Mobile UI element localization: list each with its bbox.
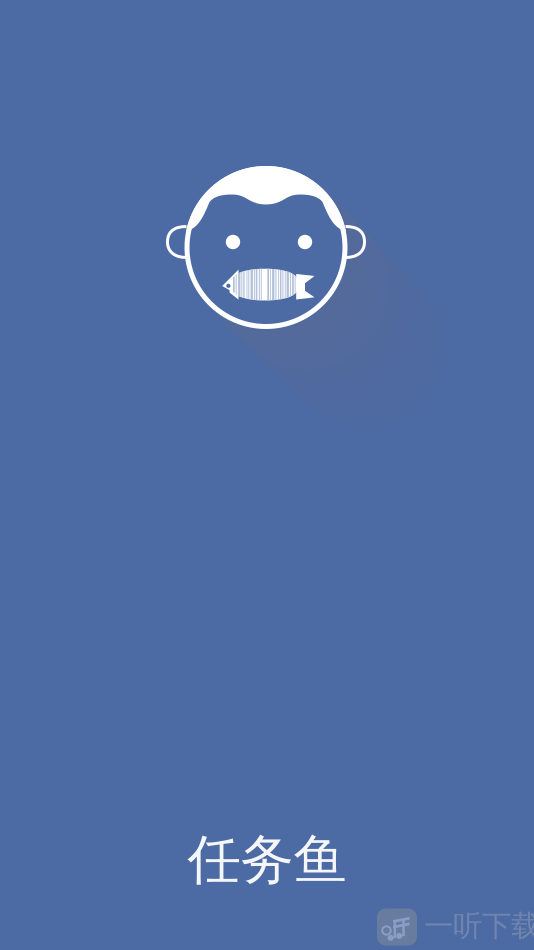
staticText: 任务鱼 — [187, 827, 346, 893]
staticText: 一听下载 — [424, 908, 534, 944]
